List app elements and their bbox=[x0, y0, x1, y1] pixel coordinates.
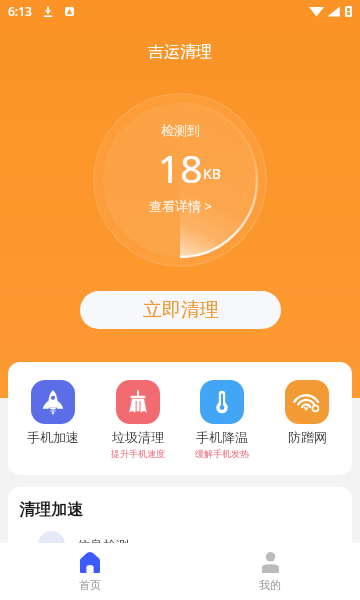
staticText: 手机降温 bbox=[196, 429, 248, 445]
staticText: 清理加速 bbox=[19, 500, 83, 520]
staticText: 手机加速 bbox=[27, 429, 79, 445]
button[interactable]: 垃圾清理 bbox=[98, 380, 178, 459]
staticText: 6:13 bbox=[8, 3, 32, 19]
staticText: 检测到 bbox=[161, 122, 200, 138]
staticText: 18 bbox=[158, 141, 203, 194]
staticText: 我的 bbox=[259, 578, 281, 592]
staticText: 垃圾清理 bbox=[112, 429, 164, 445]
staticText: 信息检测 bbox=[77, 537, 129, 553]
button[interactable]: 查看详情 > bbox=[143, 195, 218, 217]
button[interactable]: 手机降温 bbox=[182, 380, 262, 459]
staticText: 吉运清理 bbox=[148, 42, 212, 62]
staticText: 首页 bbox=[79, 578, 101, 592]
button[interactable]: 立即清理 bbox=[80, 291, 281, 329]
staticText: 防蹭网 bbox=[288, 429, 327, 445]
button[interactable]: 首页 bbox=[50, 543, 130, 600]
button[interactable]: 防蹭网 bbox=[267, 380, 347, 445]
button[interactable]: 手机加速 bbox=[13, 380, 93, 445]
staticText: 缓解手机发热 bbox=[195, 448, 249, 459]
staticText: 查看详情 > bbox=[149, 197, 212, 215]
staticText: 立即清理 bbox=[143, 298, 219, 322]
staticText: KB bbox=[203, 164, 221, 183]
staticText: 提升手机速度 bbox=[111, 448, 165, 459]
button[interactable]: 我的 bbox=[230, 543, 310, 600]
